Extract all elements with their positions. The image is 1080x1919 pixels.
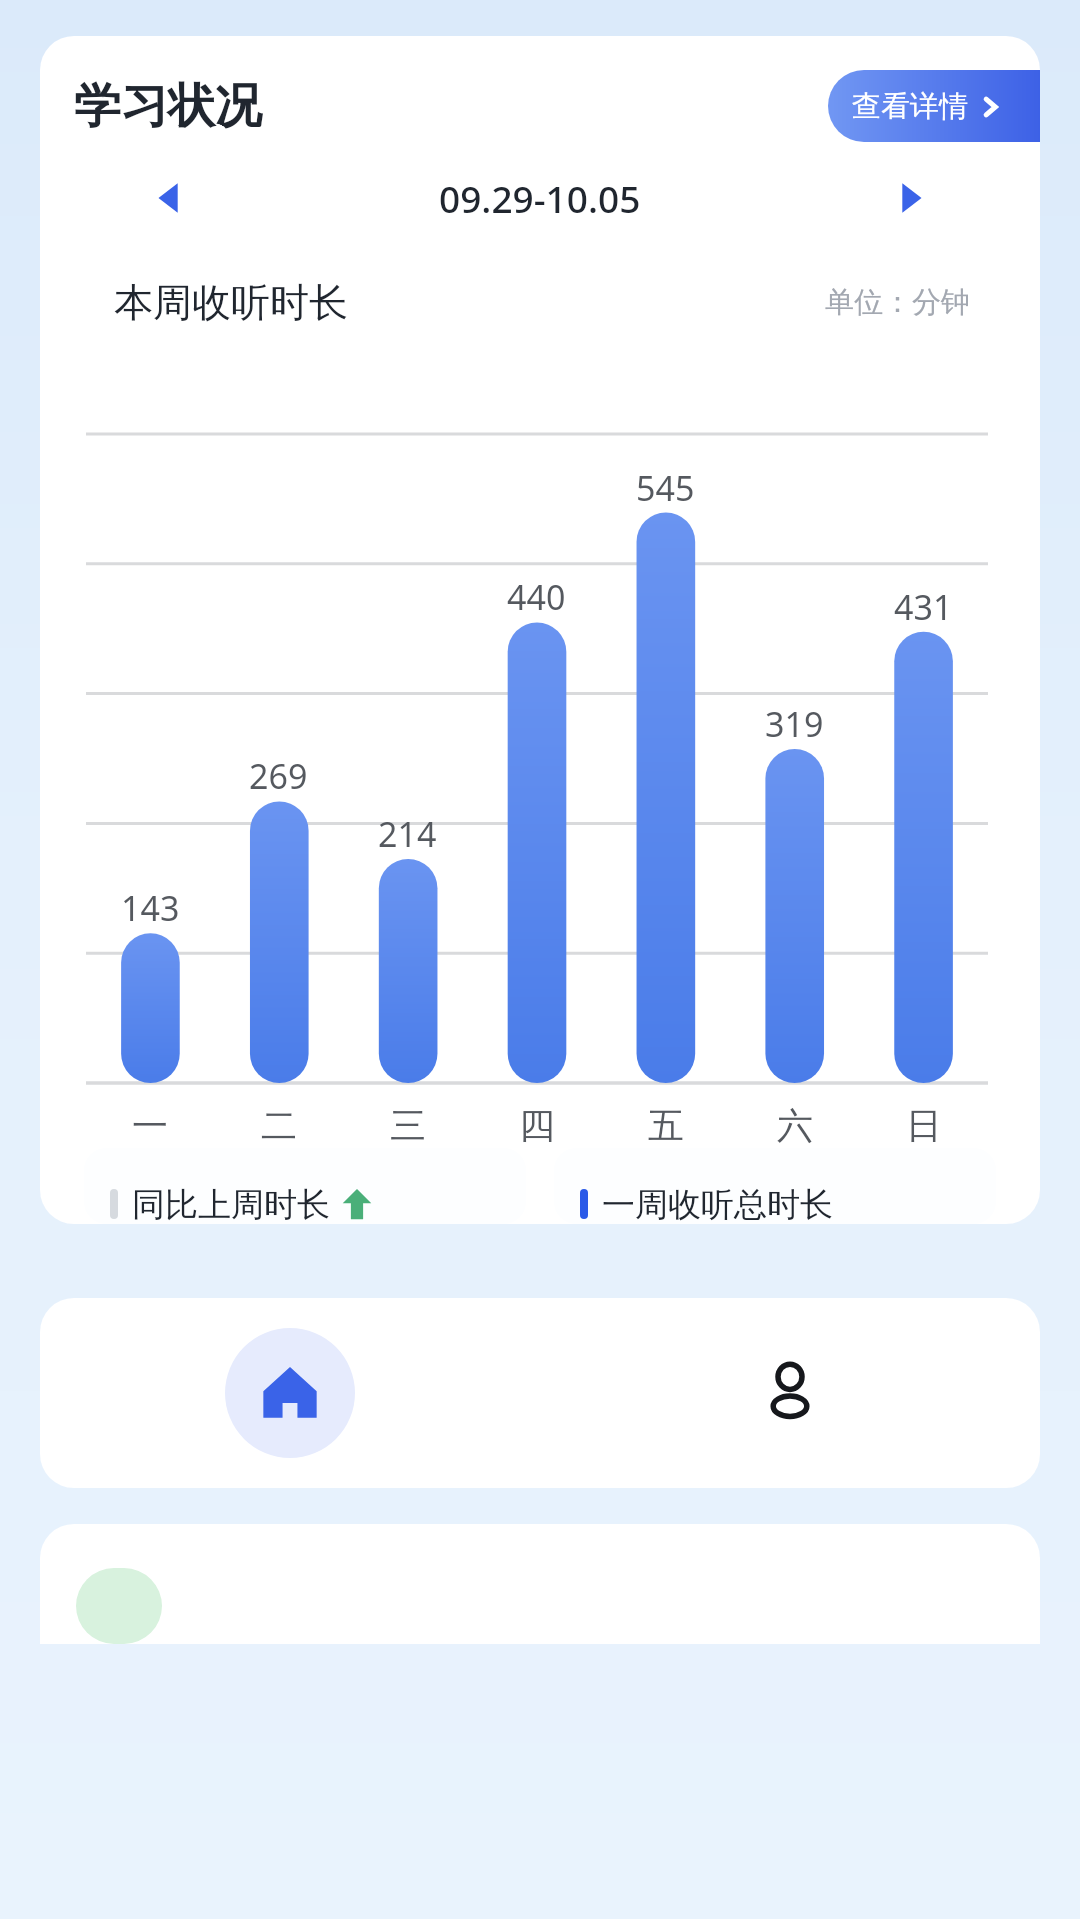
staticText: 一周收听总时长 (602, 1184, 833, 1224)
staticText: 三 (390, 1103, 426, 1148)
button[interactable]: Previous week (140, 168, 200, 228)
staticText: 545 (636, 465, 695, 511)
staticText: 单位：分钟 (825, 284, 970, 321)
staticText: 440 (507, 574, 566, 620)
button[interactable]: 同比上周时长 (84, 1148, 526, 1224)
staticText: 143 (121, 885, 180, 931)
staticText: 214 (378, 811, 437, 857)
staticText: 269 (249, 753, 308, 799)
staticText: 本周收听时长 (114, 278, 348, 327)
staticText: 学习状况 (74, 77, 262, 136)
staticText: 六 (777, 1103, 813, 1148)
button[interactable]: Profile (725, 1328, 855, 1458)
staticText: 同比上周时长 (132, 1184, 330, 1224)
button[interactable]: Next week (880, 168, 940, 228)
staticText: 查看详情 (852, 88, 968, 125)
button[interactable]: 一周收听总时长 (554, 1148, 996, 1224)
staticText: 二 (261, 1103, 297, 1148)
staticText: 一 (132, 1103, 168, 1148)
staticText: 319 (765, 701, 824, 747)
staticText: 日 (906, 1103, 942, 1148)
staticText: 五 (648, 1103, 684, 1148)
button[interactable]: Home (225, 1328, 355, 1458)
staticText: 四 (519, 1103, 555, 1148)
staticText: 09.29-10.05 (439, 173, 641, 223)
button[interactable]: 查看详情 (828, 70, 1040, 142)
staticText: 431 (894, 584, 953, 630)
